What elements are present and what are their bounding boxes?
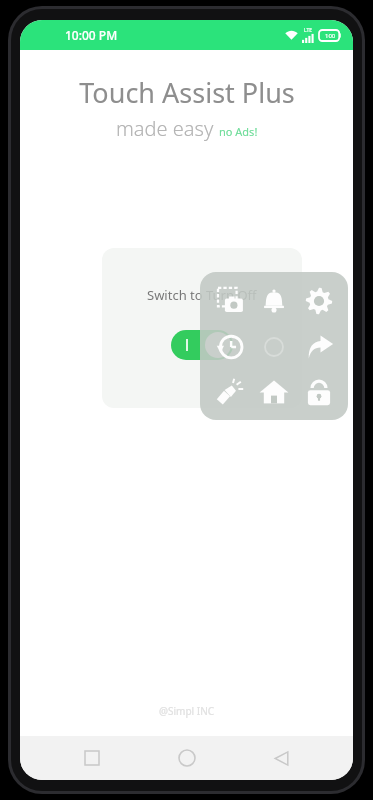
button[interactable]: Recent — [209, 326, 251, 368]
staticText: @Simpl INC — [159, 704, 215, 718]
button[interactable]: Assistive touch panel — [200, 272, 348, 420]
button[interactable]: Settings — [298, 280, 340, 322]
staticText: LTE — [304, 27, 313, 34]
button[interactable]: Share — [298, 326, 340, 368]
button[interactable]: Home button — [253, 326, 295, 368]
button[interactable]: Flashlight — [209, 371, 251, 413]
button[interactable]: Switch to Turn Off — [102, 248, 302, 408]
button[interactable]: Notifications — [253, 280, 295, 322]
staticText: no Ads! — [219, 124, 258, 139]
button[interactable]: Toggle assistive touch — [171, 330, 233, 360]
staticText: 100 — [325, 32, 336, 40]
staticText: Switch to Turn Off — [147, 286, 257, 304]
button[interactable]: Home — [253, 371, 295, 413]
button[interactable]: Recents — [70, 736, 114, 780]
button[interactable]: Screenshot — [209, 280, 251, 322]
button[interactable]: Lock — [298, 371, 340, 413]
staticText: Touch Assist Plus — [79, 74, 295, 111]
staticText: 10:00 PM — [65, 27, 118, 43]
button[interactable]: Home — [165, 736, 209, 780]
staticText: made easy — [116, 115, 219, 142]
button[interactable]: Back — [259, 736, 303, 780]
